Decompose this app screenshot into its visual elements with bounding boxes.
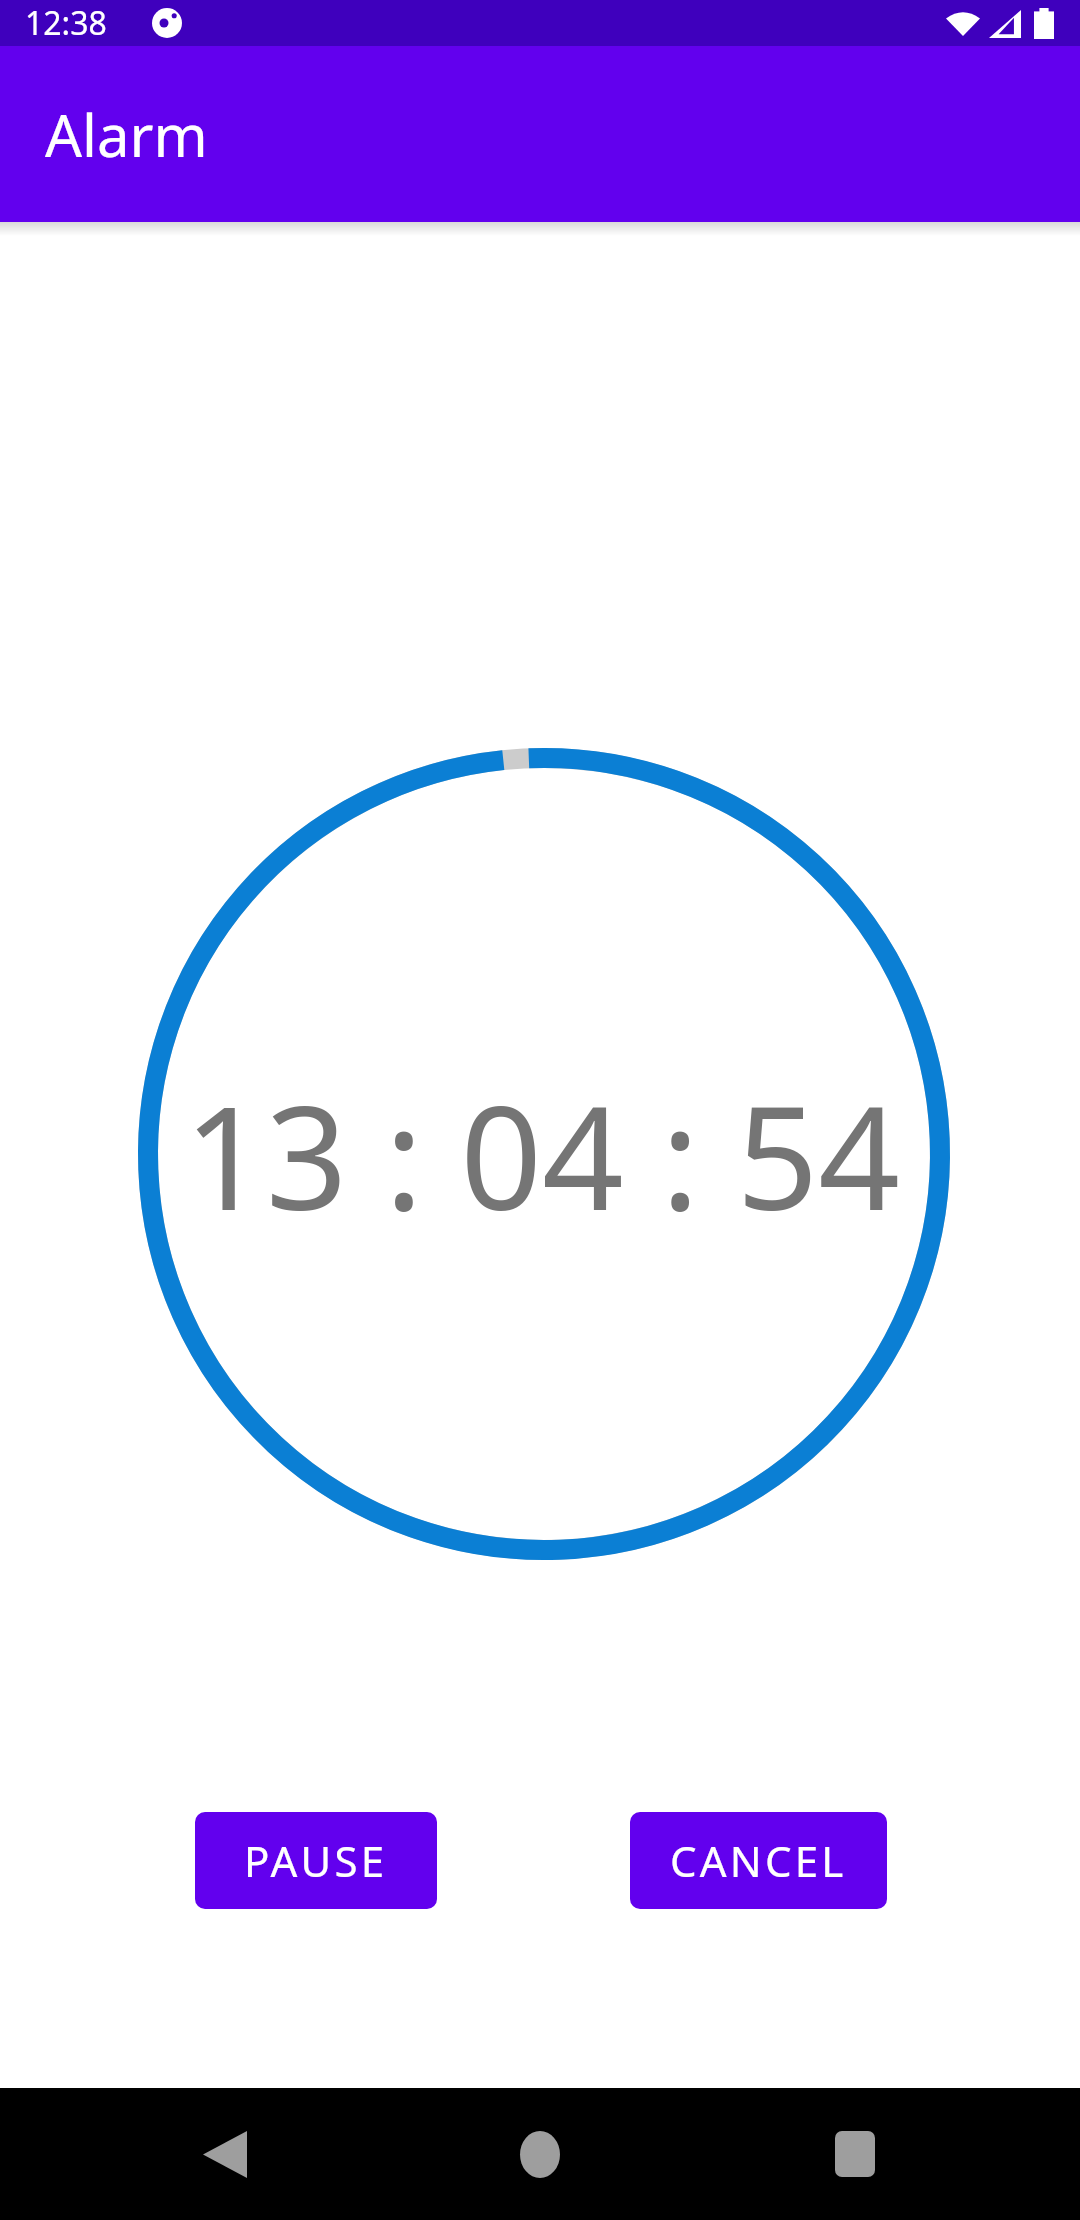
button[interactable]: Back	[165, 2094, 285, 2214]
button[interactable]: Home	[480, 2094, 600, 2214]
staticText: CANCEL	[670, 1832, 847, 1889]
button[interactable]: Recent apps	[795, 2094, 915, 2214]
staticText: 12:38	[25, 1, 107, 45]
staticText: PAUSE	[244, 1832, 388, 1889]
button[interactable]: CANCEL	[630, 1812, 887, 1909]
staticText: Alarm	[45, 95, 208, 174]
button[interactable]: PAUSE	[195, 1812, 437, 1909]
staticText: 13 : 04 : 54	[184, 1057, 901, 1252]
